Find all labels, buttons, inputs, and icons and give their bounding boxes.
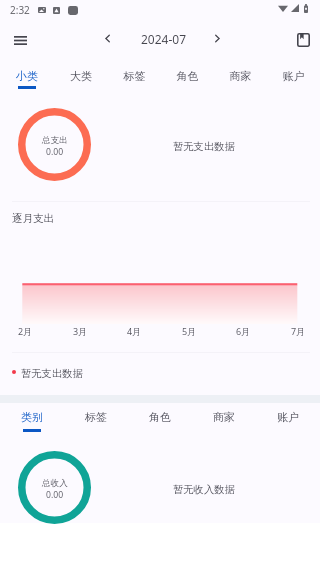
staticText: 小类 <box>0 69 54 83</box>
staticText: 3月 <box>65 325 95 337</box>
staticText: 角色 <box>161 69 214 83</box>
button[interactable]: 账户 <box>267 59 320 92</box>
button[interactable]: 标签 <box>108 59 161 92</box>
staticText: 商家 <box>192 410 256 424</box>
staticText: 暂无收入数据 <box>173 483 235 496</box>
button[interactable]: 角色 <box>161 59 214 92</box>
staticText: 4月 <box>119 325 149 337</box>
staticText: 标签 <box>108 69 161 83</box>
button[interactable]: 小类 <box>0 59 54 92</box>
staticText: 角色 <box>128 410 192 424</box>
staticText: 商家 <box>214 69 267 83</box>
staticText: 2月 <box>10 325 40 337</box>
button[interactable]: 商家 <box>214 59 267 92</box>
button[interactable]: 大类 <box>54 59 108 92</box>
staticText: 总收入 <box>42 478 68 489</box>
staticText: 标签 <box>64 410 128 424</box>
staticText: 2024-07 <box>141 31 187 47</box>
button[interactable]: 账户 <box>256 403 320 435</box>
staticText: 逐月支出 <box>12 212 54 225</box>
staticText: 总支出 <box>42 135 68 146</box>
staticText: 0.00 <box>46 489 64 501</box>
staticText: 账户 <box>267 69 320 83</box>
staticText: 0.00 <box>46 146 64 158</box>
button[interactable]: 角色 <box>128 403 192 435</box>
staticText: 暂无支出数据 <box>21 367 83 380</box>
staticText: 2:32 <box>10 3 30 17</box>
button[interactable]: 类别 <box>0 403 64 435</box>
button[interactable]: Next month <box>202 23 232 53</box>
staticText: 账户 <box>256 410 320 424</box>
staticText: 5月 <box>174 325 204 337</box>
button[interactable]: Previous month <box>92 23 122 53</box>
staticText: 暂无支出数据 <box>173 140 235 153</box>
staticText: 7月 <box>283 325 313 337</box>
button[interactable]: Account book <box>287 24 319 56</box>
staticText: 类别 <box>0 410 64 424</box>
staticText: 6月 <box>228 325 258 337</box>
button[interactable]: 商家 <box>192 403 256 435</box>
staticText: 大类 <box>54 69 108 83</box>
button[interactable]: Menu <box>4 24 36 56</box>
button[interactable]: 标签 <box>64 403 128 435</box>
